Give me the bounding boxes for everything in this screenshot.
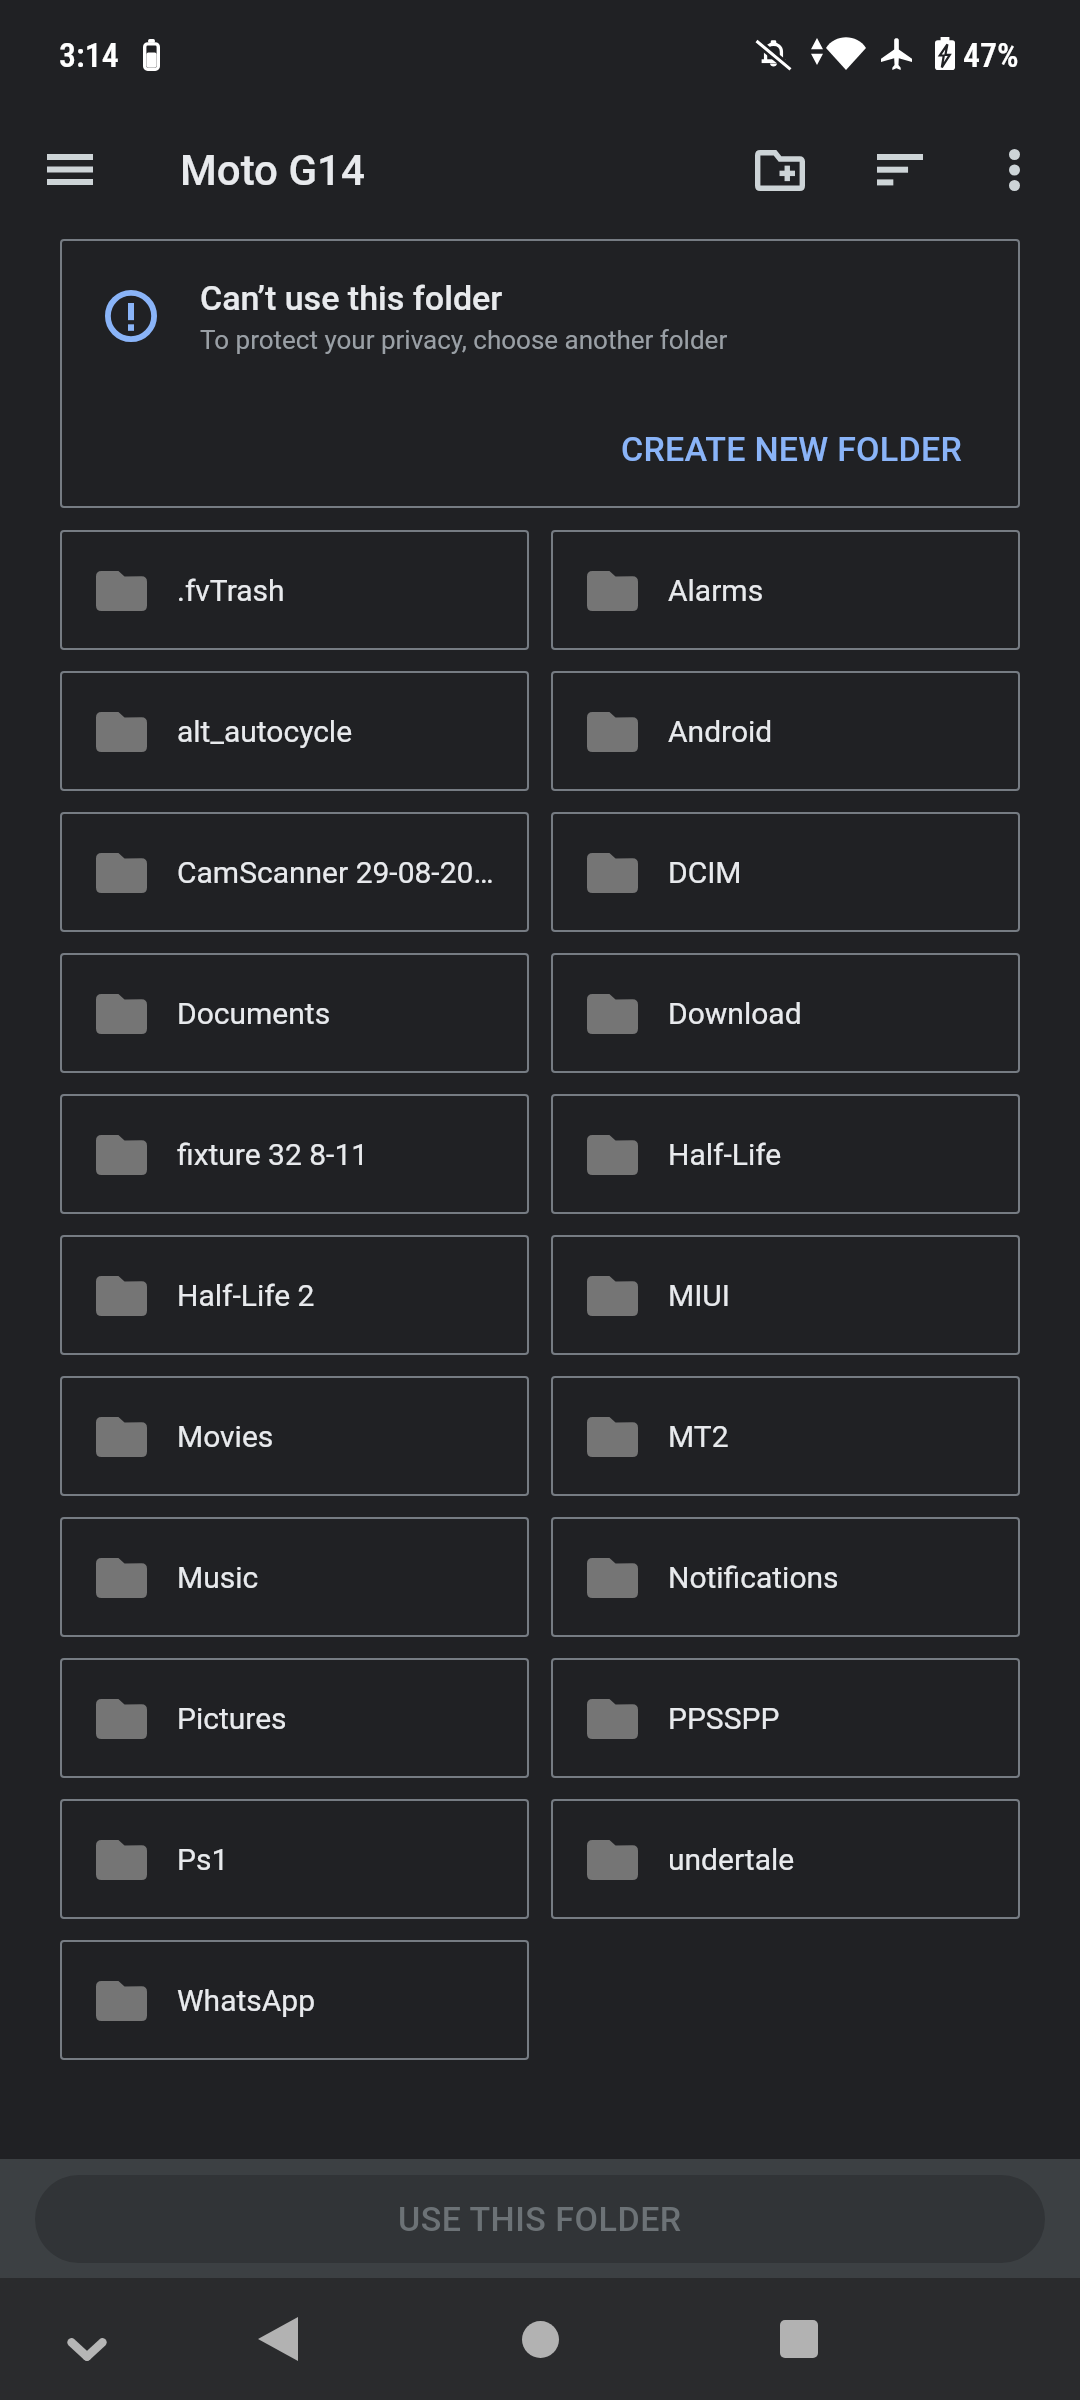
button[interactable]: Sort <box>852 121 948 217</box>
staticText: Alarms <box>668 573 764 608</box>
staticText: To protect your privacy, choose another … <box>200 325 728 355</box>
staticText: Ps1 <box>177 1842 229 1877</box>
button[interactable]: undertale <box>551 1799 1020 1919</box>
button[interactable]: alt_autocycle <box>60 671 529 791</box>
button[interactable]: Recent apps <box>752 2292 846 2386</box>
staticText: alt_autocycle <box>177 714 353 749</box>
staticText: .fvTrash <box>177 573 285 608</box>
button[interactable]: Documents <box>60 953 529 1073</box>
staticText: Half-Life 2 <box>177 1278 315 1313</box>
staticText: Movies <box>177 1419 274 1454</box>
button[interactable]: DCIM <box>551 812 1020 932</box>
button[interactable]: Half-Life 2 <box>60 1235 529 1355</box>
button[interactable]: Half-Life <box>551 1094 1020 1214</box>
button[interactable]: fixture 32 8-11 <box>60 1094 529 1214</box>
button[interactable]: Notifications <box>551 1517 1020 1637</box>
staticText: Notifications <box>668 1560 839 1595</box>
staticText: undertale <box>668 1842 795 1877</box>
staticText: PPSSPP <box>668 1701 780 1736</box>
button[interactable]: Back <box>230 2292 324 2386</box>
staticText: Documents <box>177 996 331 1031</box>
button[interactable]: Android <box>551 671 1020 791</box>
staticText: DCIM <box>668 855 742 890</box>
staticText: Pictures <box>177 1701 287 1736</box>
button[interactable]: CREATE NEW FOLDER <box>593 411 990 487</box>
button[interactable]: WhatsApp <box>60 1940 529 2060</box>
staticText: Android <box>668 714 773 749</box>
button[interactable]: Download <box>551 953 1020 1073</box>
staticText: fixture 32 8-11 <box>177 1137 369 1172</box>
button[interactable]: .fvTrash <box>60 530 529 650</box>
staticText: CamScanner 29-08-20… <box>177 855 494 890</box>
staticText: Can’t use this folder <box>200 278 503 318</box>
button[interactable]: Show roots <box>26 132 114 220</box>
staticText: 3:14 <box>59 35 119 75</box>
staticText: Moto G14 <box>180 146 365 195</box>
staticText: MT2 <box>668 1419 729 1454</box>
staticText: CREATE NEW FOLDER <box>621 429 962 469</box>
button[interactable]: Alarms <box>551 530 1020 650</box>
button[interactable]: Music <box>60 1517 529 1637</box>
staticText: MIUI <box>668 1278 730 1313</box>
button[interactable]: Create new folder <box>732 122 828 218</box>
button[interactable]: USE THIS FOLDER <box>35 2175 1045 2263</box>
staticText: 47% <box>963 35 1019 75</box>
button[interactable]: Pictures <box>60 1658 529 1778</box>
button[interactable]: CamScanner 29-08-20… <box>60 812 529 932</box>
staticText: USE THIS FOLDER <box>398 2199 682 2239</box>
button[interactable]: Movies <box>60 1376 529 1496</box>
button[interactable]: Home <box>493 2292 587 2386</box>
button[interactable]: Ps1 <box>60 1799 529 1919</box>
staticText: Half-Life <box>668 1137 782 1172</box>
staticText: Download <box>668 996 802 1031</box>
button[interactable]: Hide keyboard <box>40 2302 134 2396</box>
button[interactable]: PPSSPP <box>551 1658 1020 1778</box>
button[interactable]: More options <box>966 122 1062 218</box>
button[interactable]: MIUI <box>551 1235 1020 1355</box>
staticText: WhatsApp <box>177 1983 316 2018</box>
staticText: Music <box>177 1560 259 1595</box>
button[interactable]: MT2 <box>551 1376 1020 1496</box>
